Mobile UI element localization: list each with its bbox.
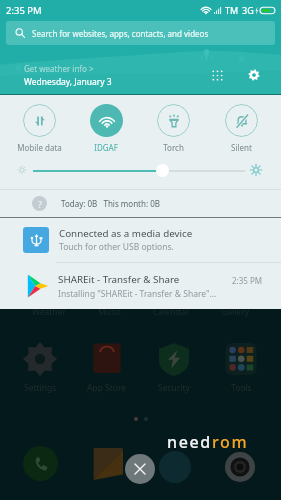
button[interactable]: SHAREit - Transfer & Share bbox=[0, 263, 281, 309]
staticText: Settings bbox=[24, 382, 57, 394]
button[interactable]: Mobile data bbox=[9, 104, 69, 153]
staticText: Calendar bbox=[153, 306, 189, 318]
staticText: Today: 0B This month: 0B bbox=[61, 198, 160, 209]
staticText: Connected as a media device bbox=[59, 227, 193, 240]
staticText: Silent bbox=[231, 142, 252, 153]
staticText: Wednesday, January 3 bbox=[24, 76, 112, 88]
staticText: Search for websites, apps, contacts, and… bbox=[32, 28, 209, 39]
button[interactable]: Camera bbox=[225, 452, 255, 482]
button[interactable]: ? bbox=[0, 190, 281, 217]
staticText: Get weather info > bbox=[24, 63, 94, 74]
staticText: Music bbox=[98, 306, 122, 318]
staticText: IDGAF bbox=[94, 142, 118, 153]
staticText: Tools bbox=[231, 382, 252, 394]
button[interactable]: All apps bbox=[207, 65, 227, 85]
button[interactable]: Security bbox=[144, 342, 204, 394]
staticText: need bbox=[167, 431, 212, 453]
staticText: Touch for other USB options. bbox=[59, 241, 174, 253]
staticText: Installing "SHAREit - Transfer & Share".… bbox=[58, 288, 217, 300]
button[interactable]: App Store bbox=[77, 342, 137, 394]
staticText: SHAREit - Transfer & Share bbox=[58, 273, 180, 286]
staticText: Weather bbox=[32, 306, 66, 318]
button[interactable]: Browser bbox=[159, 451, 191, 483]
button[interactable]: Connected as a media device bbox=[0, 218, 281, 262]
staticText: Gallery bbox=[221, 306, 249, 318]
button[interactable]: Brightness bbox=[156, 164, 169, 177]
staticText: TM bbox=[225, 4, 239, 16]
button[interactable]: Messaging bbox=[93, 448, 123, 480]
button[interactable]: Search for websites, apps, contacts, and… bbox=[6, 21, 275, 45]
button[interactable]: Phone bbox=[23, 446, 58, 481]
staticText: rom bbox=[212, 431, 249, 453]
button[interactable]: Get weather info > bbox=[24, 63, 112, 88]
staticText: 2:35 PM bbox=[6, 4, 42, 17]
staticText: 2:35 PM bbox=[232, 275, 263, 286]
button[interactable]: Silent bbox=[211, 104, 271, 153]
button[interactable]: Settings bbox=[10, 342, 70, 394]
button[interactable]: IDGAF bbox=[76, 104, 136, 153]
staticText: ? bbox=[38, 198, 42, 210]
button[interactable]: Tools bbox=[211, 342, 271, 394]
staticText: 3G bbox=[242, 4, 254, 16]
staticText: Mobile data bbox=[17, 142, 62, 153]
staticText: Security bbox=[158, 382, 190, 394]
button[interactable]: Torch bbox=[143, 104, 203, 153]
staticText: App Store bbox=[87, 382, 127, 394]
button[interactable]: Close notification shade bbox=[125, 454, 155, 484]
button[interactable]: Settings bbox=[244, 65, 264, 85]
staticText: Torch bbox=[163, 142, 184, 153]
